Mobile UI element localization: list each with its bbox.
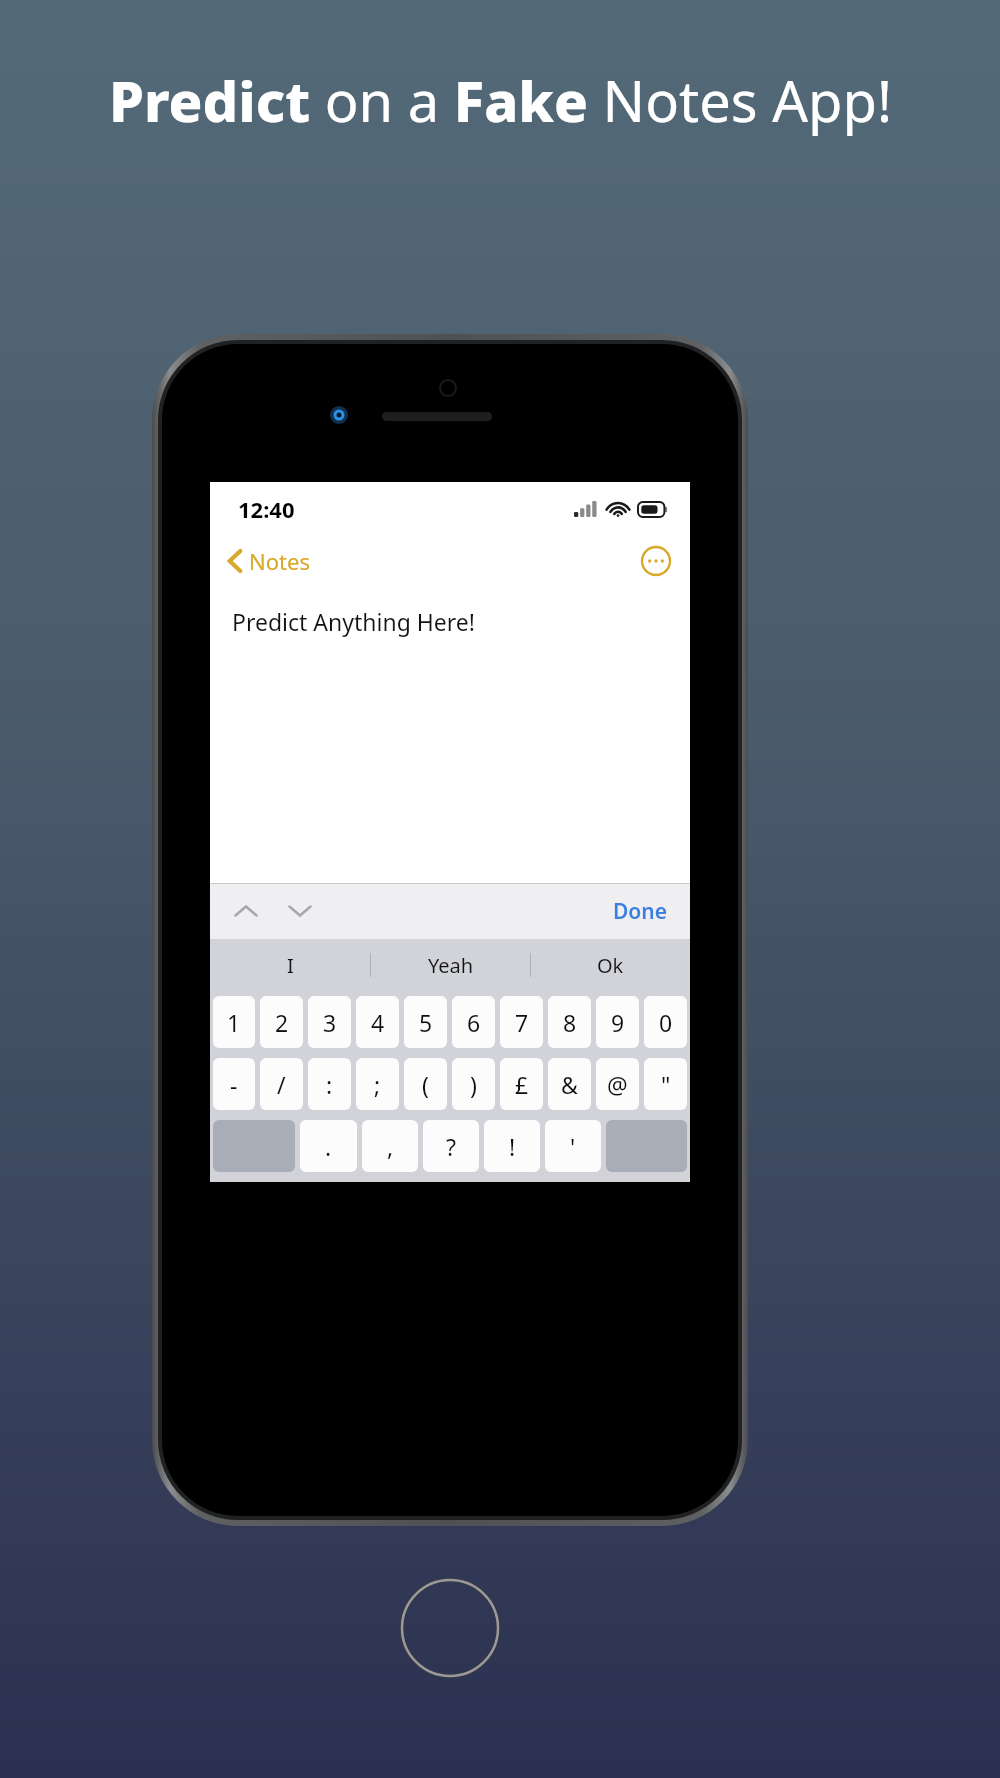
- staticText: /: [277, 1069, 286, 1100]
- staticText: £: [515, 1069, 529, 1100]
- button[interactable]: 7: [500, 996, 543, 1048]
- staticText: ): [470, 1069, 477, 1100]
- staticText: Yeah: [428, 952, 474, 979]
- button[interactable]: -: [213, 1058, 255, 1110]
- staticText: :: [326, 1069, 333, 1100]
- button[interactable]: 9: [596, 996, 639, 1048]
- staticText: ": [661, 1069, 671, 1100]
- button[interactable]: More symbols: [213, 1120, 295, 1172]
- button[interactable]: @: [596, 1058, 639, 1110]
- staticText: @: [607, 1069, 628, 1100]
- button[interactable]: 0: [644, 996, 687, 1048]
- button[interactable]: Yeah: [371, 939, 530, 991]
- button[interactable]: ;: [356, 1058, 399, 1110]
- button[interactable]: 5: [404, 996, 447, 1048]
- staticText: Ok: [597, 952, 624, 979]
- staticText: Notes: [249, 546, 310, 576]
- staticText: (: [422, 1069, 429, 1100]
- button[interactable]: 2: [260, 996, 303, 1048]
- staticText: 8: [563, 1007, 577, 1038]
- button[interactable]: ?: [423, 1120, 479, 1172]
- staticText: !: [509, 1131, 516, 1162]
- staticText: .: [325, 1131, 332, 1162]
- staticText: Predict on a Fake Notes App!: [109, 62, 892, 138]
- staticText: 9: [611, 1007, 625, 1038]
- button[interactable]: (: [404, 1058, 447, 1110]
- button[interactable]: 8: [548, 996, 591, 1048]
- button[interactable]: ,: [362, 1120, 418, 1172]
- button[interactable]: Next field: [278, 889, 322, 933]
- button[interactable]: Notes: [210, 540, 322, 582]
- button[interactable]: ": [644, 1058, 687, 1110]
- button[interactable]: !: [484, 1120, 540, 1172]
- staticText: I: [287, 952, 294, 979]
- staticText: -: [230, 1069, 238, 1100]
- staticText: 2: [275, 1007, 289, 1038]
- button[interactable]: 6: [452, 996, 495, 1048]
- staticText: ?: [446, 1131, 456, 1162]
- button[interactable]: Previous field: [224, 889, 268, 933]
- staticText: 3: [323, 1007, 337, 1038]
- staticText: 12:40: [238, 494, 295, 524]
- staticText: 0: [659, 1007, 673, 1038]
- button[interactable]: :: [308, 1058, 351, 1110]
- staticText: 6: [467, 1007, 481, 1038]
- staticText: ,: [387, 1131, 394, 1162]
- button[interactable]: £: [500, 1058, 543, 1110]
- staticText: ': [570, 1131, 576, 1162]
- staticText: ;: [374, 1069, 381, 1100]
- button[interactable]: &: [548, 1058, 591, 1110]
- button[interactable]: 3: [308, 996, 351, 1048]
- button[interactable]: ): [452, 1058, 495, 1110]
- staticText: &: [561, 1069, 578, 1100]
- staticText: 7: [515, 1007, 529, 1038]
- button[interactable]: 1: [213, 996, 255, 1048]
- staticText: 4: [371, 1007, 385, 1038]
- button[interactable]: ': [545, 1120, 601, 1172]
- staticText: 5: [419, 1007, 433, 1038]
- button[interactable]: /: [260, 1058, 303, 1110]
- button[interactable]: 4: [356, 996, 399, 1048]
- button[interactable]: Backspace: [606, 1120, 687, 1172]
- button[interactable]: .: [300, 1120, 357, 1172]
- button[interactable]: More options: [636, 541, 676, 581]
- button[interactable]: Done: [591, 887, 690, 936]
- staticText: Predict Anything Here!: [232, 606, 475, 637]
- button[interactable]: I: [210, 939, 370, 991]
- staticText: Done: [613, 897, 668, 926]
- button[interactable]: Ok: [531, 939, 690, 991]
- staticText: 1: [227, 1007, 241, 1038]
